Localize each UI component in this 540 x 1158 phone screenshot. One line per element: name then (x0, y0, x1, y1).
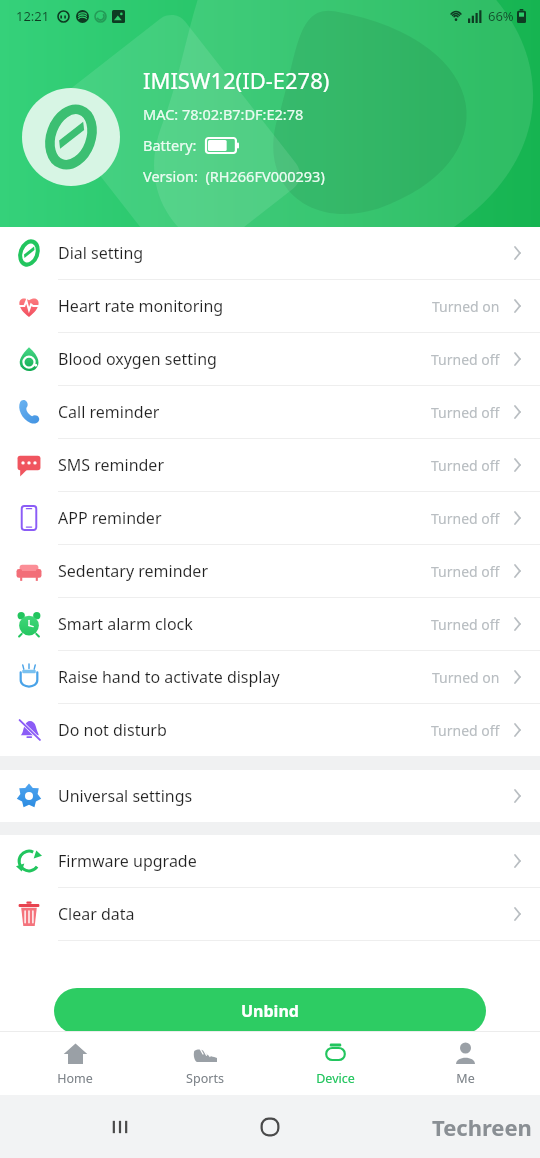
button[interactable]: Call reminder (0, 386, 540, 438)
button[interactable]: Sedentary reminder (0, 545, 540, 597)
staticText: Firmware upgrade (58, 850, 508, 872)
button[interactable]: Firmware upgrade (0, 835, 540, 887)
button[interactable]: Universal settings (0, 770, 540, 822)
staticText: Smart alarm clock (58, 613, 431, 635)
staticText: Sports (186, 1070, 224, 1087)
button[interactable]: Home (20, 1041, 130, 1087)
staticText: Turned off (431, 615, 500, 634)
button[interactable]: Heart rate monitoring (0, 280, 540, 332)
staticText: Call reminder (58, 401, 431, 423)
staticText: 66% (488, 7, 514, 25)
button[interactable]: Smart alarm clock (0, 598, 540, 650)
button[interactable]: Dial setting (0, 227, 540, 279)
staticText: Heart rate monitoring (58, 295, 432, 317)
staticText: Home (57, 1070, 93, 1087)
staticText: Device (316, 1070, 355, 1087)
staticText: APP reminder (58, 507, 431, 529)
staticText: Turned off (431, 403, 500, 422)
staticText: Me (456, 1070, 475, 1087)
button[interactable]: Sports (150, 1041, 260, 1087)
staticText: Turned off (431, 350, 500, 369)
staticText: Sedentary reminder (58, 560, 431, 582)
staticText: Raise hand to activate display (58, 666, 432, 688)
staticText: Techreen (432, 1112, 532, 1142)
staticText: Turned off (431, 721, 500, 740)
staticText: SMS reminder (58, 454, 431, 476)
button[interactable]: Do not disturb (0, 704, 540, 756)
button[interactable]: Blood oxygen setting (0, 333, 540, 385)
staticText: Turned off (431, 562, 500, 581)
staticText: Unbind (241, 1000, 299, 1022)
staticText: Turned off (431, 509, 500, 528)
staticText: 12:21 (16, 7, 50, 25)
staticText: IMISW12(ID-E278) (143, 65, 330, 95)
staticText: Universal settings (58, 785, 508, 807)
staticText: Turned on (432, 668, 500, 687)
button[interactable]: Unbind (54, 988, 486, 1034)
staticText: MAC: 78:02:B7:DF:E2:78 (143, 104, 304, 124)
staticText: Do not disturb (58, 719, 431, 741)
staticText: Battery: (143, 135, 197, 155)
staticText: Turned on (432, 297, 500, 316)
staticText: Dial setting (58, 242, 508, 264)
button[interactable]: Me (410, 1041, 520, 1087)
button[interactable]: SMS reminder (0, 439, 540, 491)
staticText: Blood oxygen setting (58, 348, 431, 370)
button[interactable]: APP reminder (0, 492, 540, 544)
button[interactable]: Device (280, 1041, 390, 1087)
staticText: Turned off (431, 456, 500, 475)
button[interactable]: Clear data (0, 888, 540, 940)
button[interactable]: Raise hand to activate display (0, 651, 540, 703)
staticText: Clear data (58, 903, 508, 925)
staticText: Version: (RH266FV000293) (143, 166, 325, 186)
